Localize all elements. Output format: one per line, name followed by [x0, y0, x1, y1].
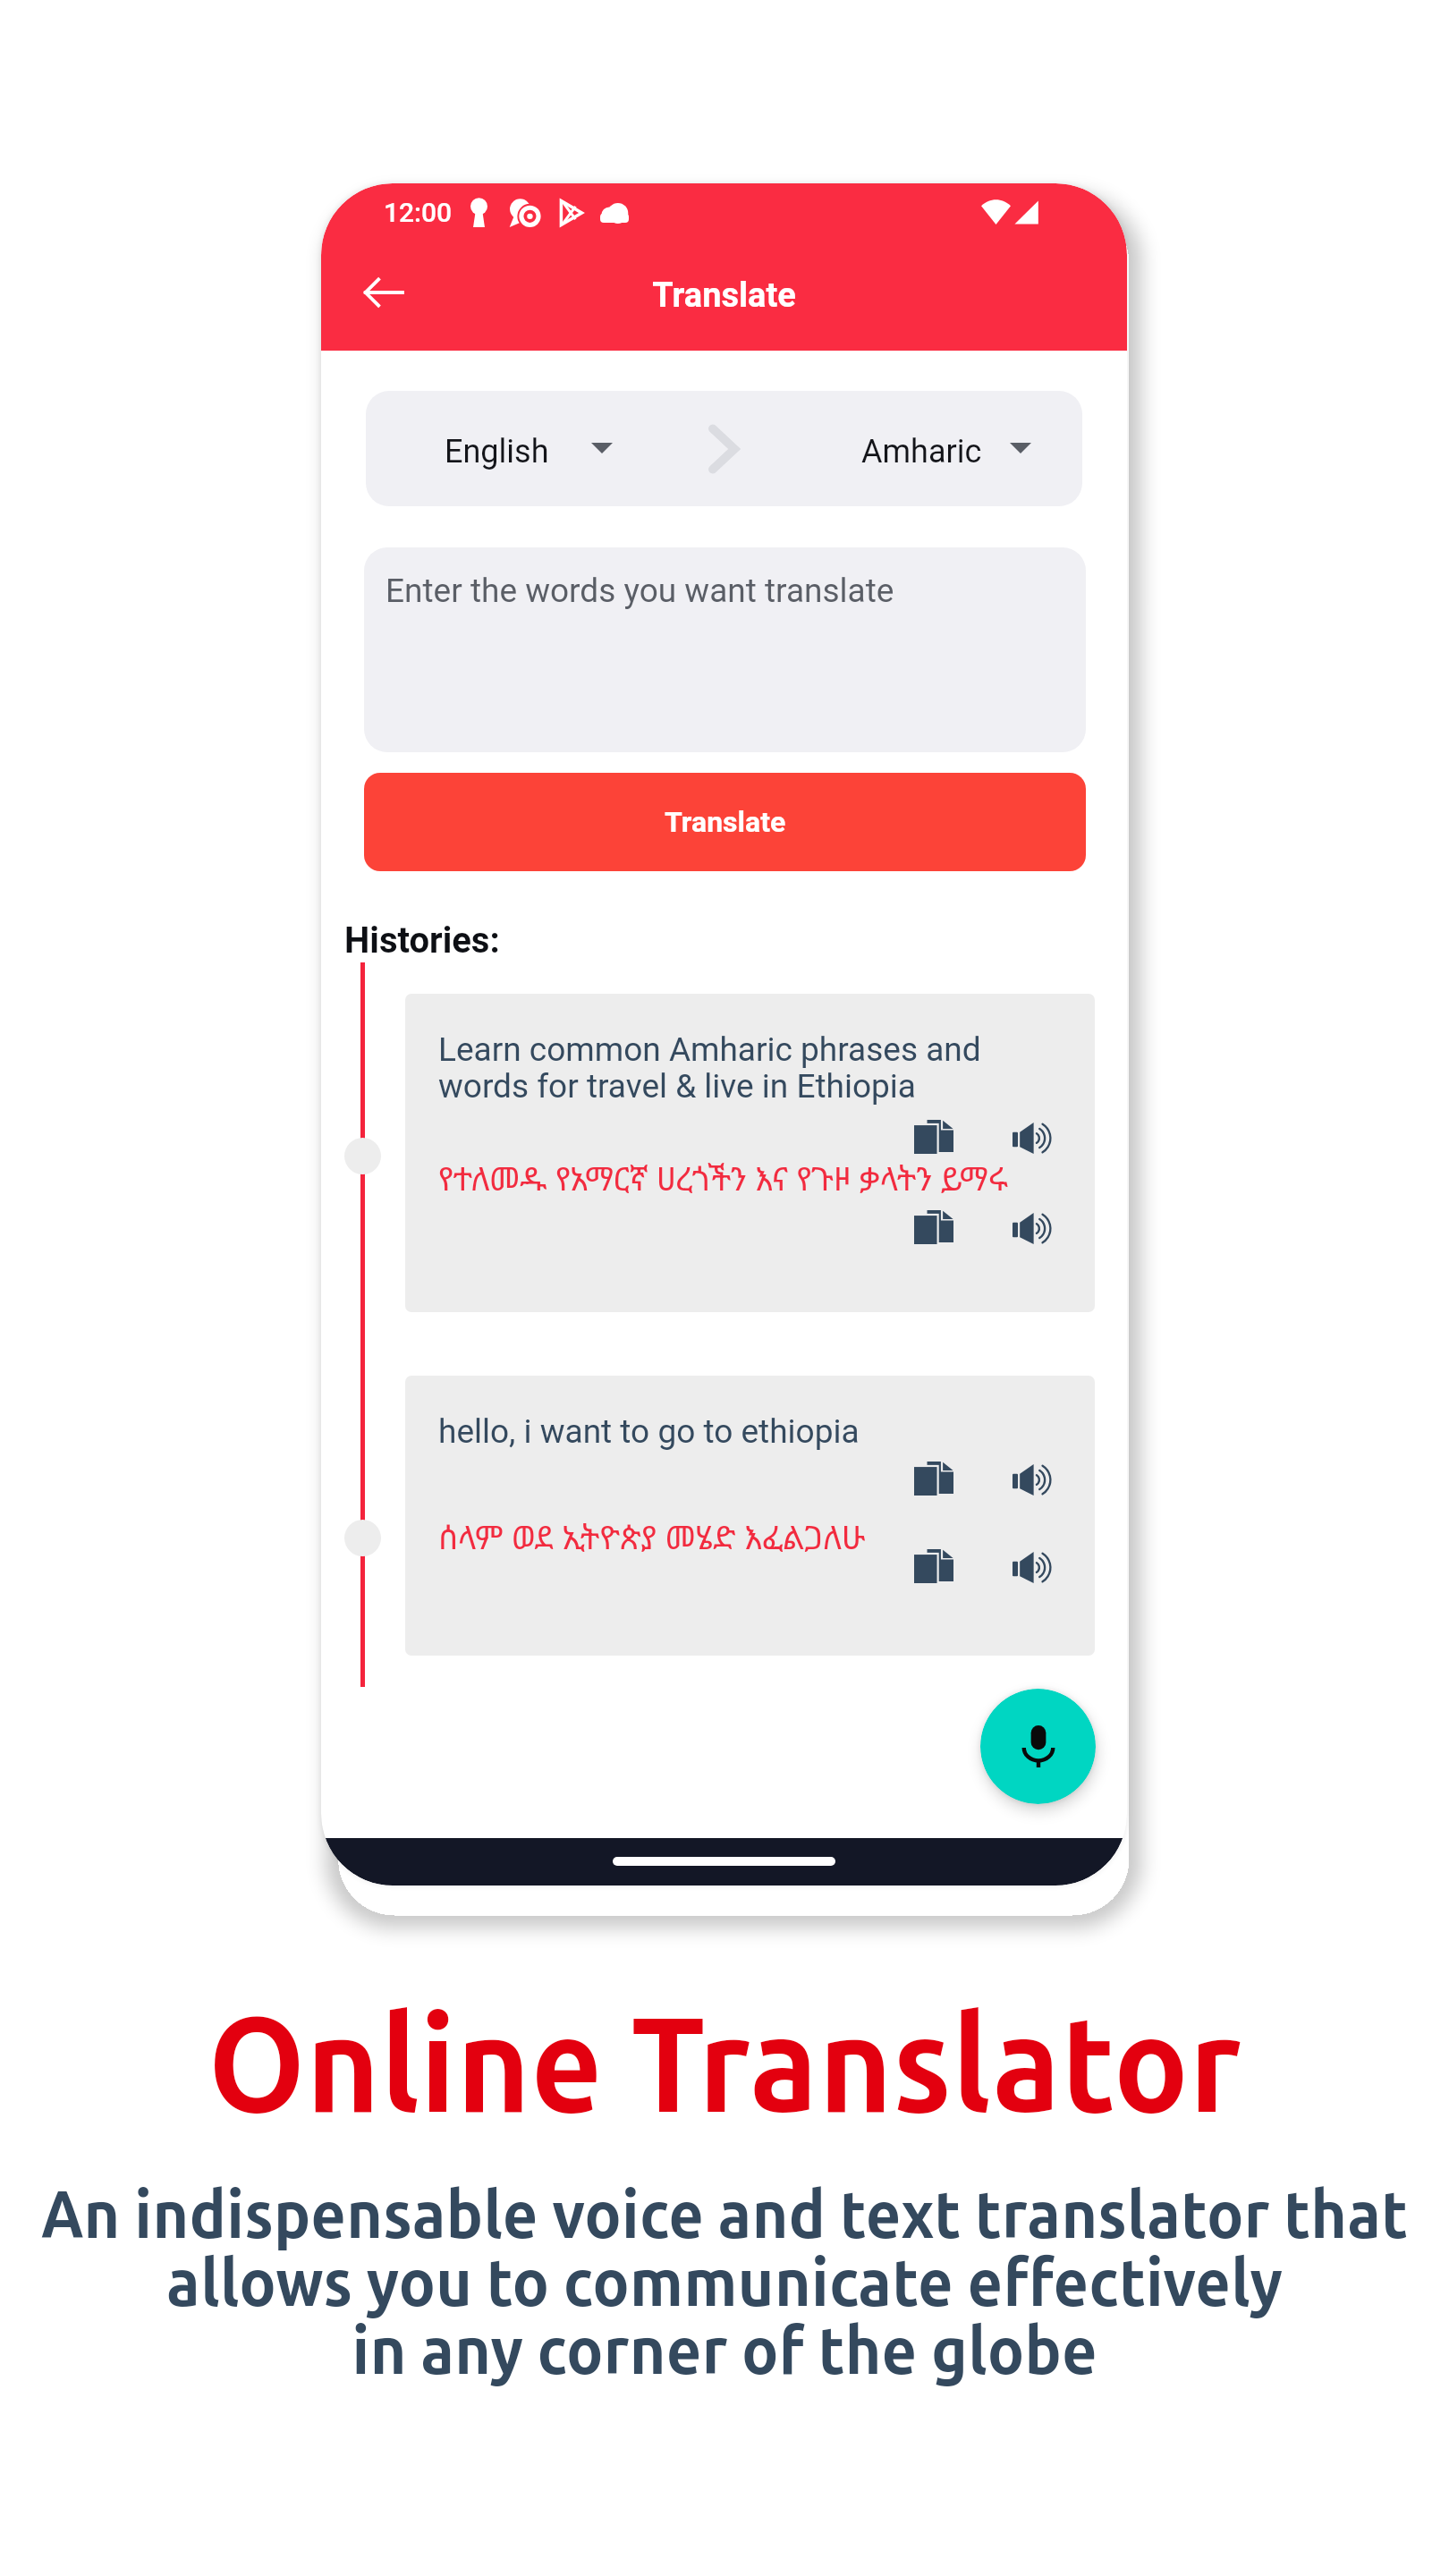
button[interactable]: Learn common Amharic phrases and words f… — [405, 994, 1095, 1312]
staticText: Enter the words you want translate — [386, 572, 894, 610]
staticText: የተለመዱ የአማርኛ ሀረጎችን እና የጉዞ ቃላትን ይማሩ — [438, 1157, 1009, 1200]
button[interactable]: Copy — [914, 1462, 953, 1496]
button[interactable]: Listen — [1013, 1123, 1051, 1154]
staticText: 12:00 — [384, 197, 453, 228]
button[interactable]: Translate — [364, 773, 1086, 871]
staticText: hello, i want to go to ethiopia — [438, 1412, 860, 1451]
button[interactable]: Listen — [1013, 1464, 1051, 1496]
button[interactable]: Voice input — [980, 1689, 1096, 1804]
staticText: Translate — [665, 805, 786, 839]
button[interactable]: Listen to translation — [1013, 1552, 1051, 1583]
button[interactable]: Copy translation — [914, 1210, 953, 1244]
button[interactable]: English — [428, 391, 688, 506]
button[interactable]: Copy translation — [914, 1549, 953, 1583]
button[interactable]: Enter the words you want translate — [364, 547, 1086, 752]
button[interactable]: Listen to translation — [1013, 1213, 1051, 1244]
staticText: Translate — [321, 275, 1127, 316]
button[interactable]: Back — [343, 253, 422, 332]
staticText: Histories: — [344, 919, 500, 962]
staticText: ሰላም ወደ ኢትዮጵያ መሄድ እፈልጋለሁ — [438, 1515, 866, 1559]
button[interactable]: Amharic — [777, 391, 1082, 506]
button[interactable]: hello, i want to go to ethiopia — [405, 1376, 1095, 1656]
staticText: English — [445, 433, 549, 470]
button[interactable]: Copy — [914, 1120, 953, 1154]
staticText: Amharic — [861, 433, 982, 470]
staticText: Learn common Amharic phrases and words f… — [438, 1030, 981, 1106]
staticText: An indispensable voice and text translat… — [0, 2176, 1449, 2386]
staticText: Online Translator — [0, 1987, 1449, 2137]
